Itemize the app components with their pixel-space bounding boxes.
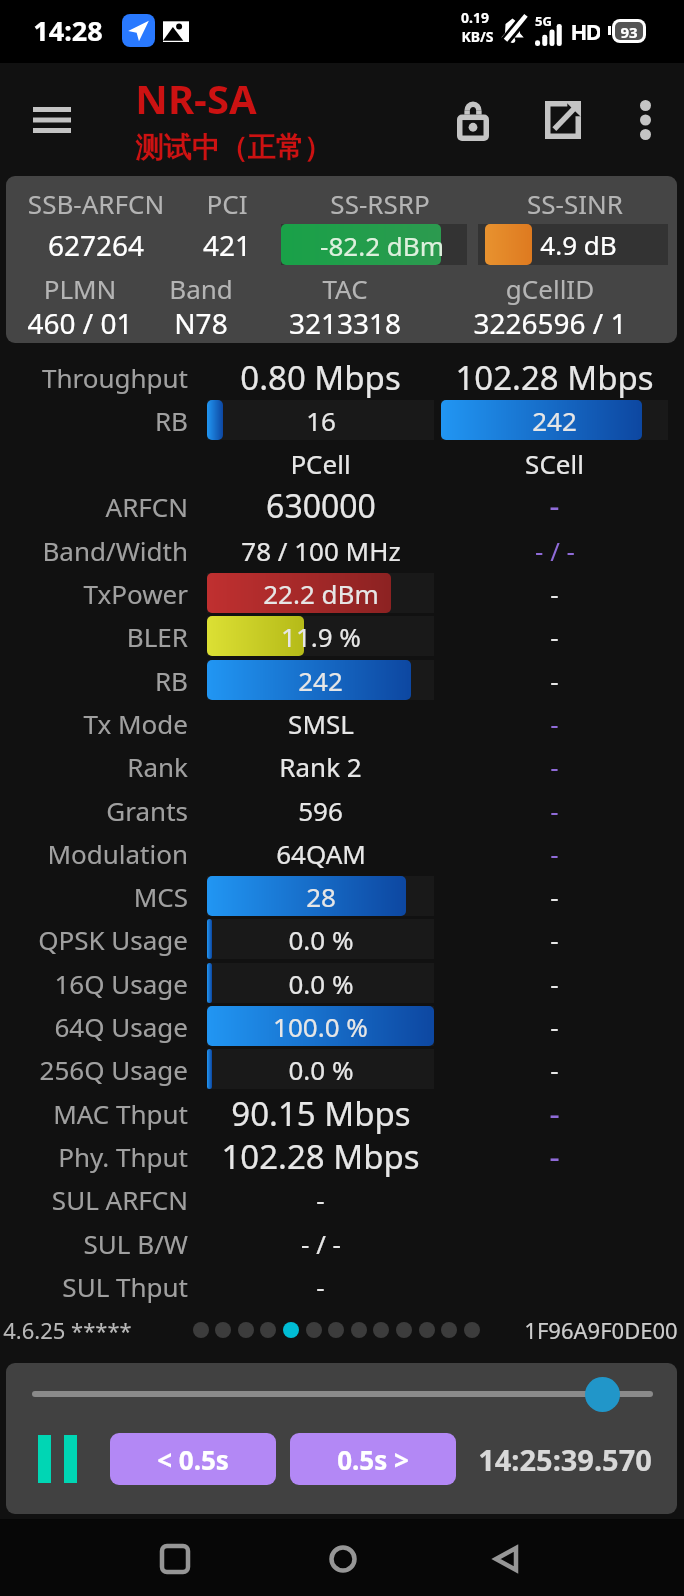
button[interactable]: RB xyxy=(0,398,188,442)
staticText: - / - xyxy=(535,533,575,568)
staticText: 64Q Usage xyxy=(54,1009,188,1044)
staticText: 3213318 xyxy=(195,304,495,342)
button[interactable]: SUL ARFCN xyxy=(0,1177,188,1221)
button[interactable]: SUL B/W xyxy=(0,1221,188,1265)
staticText: SCell xyxy=(525,446,584,481)
button[interactable]: 16Q Usage xyxy=(0,961,188,1005)
staticText: BLER xyxy=(126,619,188,654)
staticText: 22.2 dBm xyxy=(263,576,379,611)
button[interactable]: Navigation menu xyxy=(14,82,90,158)
button[interactable]: RB xyxy=(0,658,188,702)
staticText: 14:28 xyxy=(33,12,103,49)
staticText: - xyxy=(550,1052,559,1087)
button[interactable]: SUL Thput xyxy=(0,1264,188,1308)
staticText: 16 xyxy=(306,403,336,438)
staticText: Modulation xyxy=(47,836,188,871)
staticText: Band/Width xyxy=(42,533,188,568)
staticText: MAC Thput xyxy=(53,1096,188,1131)
staticText: TAC xyxy=(195,271,495,306)
button[interactable]: Throughput xyxy=(0,355,188,399)
staticText: MCS xyxy=(133,879,188,914)
staticText: 460 / 01 xyxy=(6,304,230,342)
staticText: Phy. Thput xyxy=(58,1139,188,1174)
button[interactable]: Phy. Thput xyxy=(0,1134,188,1178)
button[interactable]: ARFCN xyxy=(0,484,188,528)
staticText: PCell xyxy=(290,446,351,481)
button[interactable]: Recents xyxy=(135,1519,215,1596)
staticText: 0.80 Mbps xyxy=(240,355,401,399)
button[interactable]: TxPower xyxy=(0,571,188,615)
staticText: - / - xyxy=(301,1226,341,1261)
button[interactable]: BLER xyxy=(0,614,188,658)
staticText: - xyxy=(550,1009,559,1044)
staticText: - xyxy=(550,706,559,741)
staticText: 102.28 Mbps xyxy=(455,355,654,399)
staticText: - xyxy=(550,836,559,871)
staticText: SS-SINR xyxy=(425,186,677,221)
button[interactable]: Open in new window xyxy=(527,84,599,156)
staticText: - xyxy=(550,749,559,784)
staticText: - xyxy=(550,922,559,957)
staticText: 4.9 dB xyxy=(540,227,617,262)
staticText: HD xyxy=(570,16,600,46)
button[interactable]: 0.5s > xyxy=(290,1433,456,1485)
staticText: SS-RSRP xyxy=(230,186,530,221)
staticText: 421 xyxy=(77,226,377,264)
button[interactable]: More options xyxy=(612,87,678,153)
button[interactable]: Modulation xyxy=(0,831,188,875)
staticText: PLMN xyxy=(6,271,230,306)
button[interactable]: Tx Mode xyxy=(0,701,188,745)
button[interactable]: < 0.5s xyxy=(110,1433,276,1485)
staticText: 测试中（正常） xyxy=(131,130,336,165)
staticText: 0.0 % xyxy=(288,922,354,957)
staticText: 64QAM xyxy=(276,836,366,871)
staticText: 93 xyxy=(620,22,638,40)
staticText: 28 xyxy=(306,879,336,914)
staticText: SMSL xyxy=(288,706,354,741)
staticText: ARFCN xyxy=(105,489,188,524)
staticText: - xyxy=(550,576,559,611)
staticText: -82.2 dBm xyxy=(232,228,532,263)
staticText: 242 xyxy=(298,663,343,698)
button[interactable]: 256Q Usage xyxy=(0,1047,188,1091)
staticText: TxPower xyxy=(83,576,188,611)
staticText: 0.19 xyxy=(461,8,489,27)
staticText: Band xyxy=(51,271,351,306)
staticText: SUL B/W xyxy=(83,1226,188,1261)
button[interactable]: QPSK Usage xyxy=(0,917,188,961)
button[interactable]: Band/Width xyxy=(0,528,188,572)
staticText: N78 xyxy=(51,304,351,342)
staticText: - xyxy=(549,484,560,528)
button[interactable]: Lock xyxy=(437,84,509,156)
staticText: 596 xyxy=(298,793,343,828)
staticText: 102.28 Mbps xyxy=(221,1134,420,1178)
staticText: - xyxy=(550,663,559,698)
staticText: 1F96A9F0DE00 xyxy=(524,1315,678,1345)
staticText: - xyxy=(316,1269,325,1304)
button[interactable]: MCS xyxy=(0,874,188,918)
button[interactable]: Back xyxy=(466,1519,546,1596)
staticText: 90.15 Mbps xyxy=(231,1091,411,1135)
button[interactable]: Pause xyxy=(38,1435,78,1483)
button[interactable]: 64Q Usage xyxy=(0,1004,188,1048)
staticText: 242 xyxy=(532,403,577,438)
button[interactable]: Rank xyxy=(0,744,188,788)
staticText: 0.5s > xyxy=(337,1442,409,1477)
staticText: RB xyxy=(154,403,188,438)
staticText: 4.6.25 ***** xyxy=(3,1315,132,1345)
button[interactable]: MAC Thput xyxy=(0,1091,188,1135)
staticText: - xyxy=(550,966,559,1001)
staticText: 0.0 % xyxy=(288,966,354,1001)
button[interactable]: Time slider thumb xyxy=(585,1377,620,1412)
button[interactable]: Home xyxy=(303,1519,383,1596)
staticText: 100.0 % xyxy=(273,1009,368,1044)
staticText: Throughput xyxy=(41,360,188,395)
staticText: 3226596 / 1 xyxy=(400,304,677,342)
staticText: Rank 2 xyxy=(279,749,362,784)
staticText: Tx Mode xyxy=(83,706,188,741)
staticText: - xyxy=(550,879,559,914)
staticText: Rank xyxy=(127,749,188,784)
button[interactable]: Grants xyxy=(0,788,188,832)
staticText: SUL Thput xyxy=(62,1269,188,1304)
